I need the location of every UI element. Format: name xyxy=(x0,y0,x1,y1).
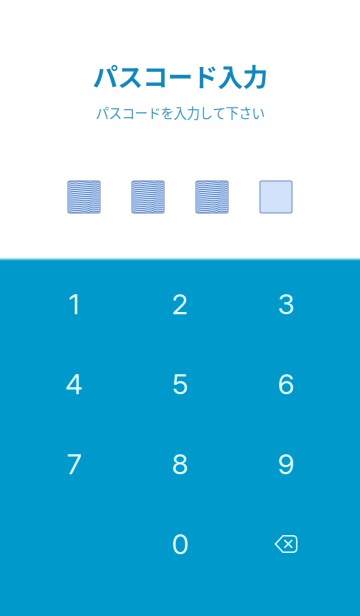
staticText: パスコード入力 xyxy=(92,57,267,94)
button[interactable]: 4 xyxy=(21,344,127,424)
button[interactable]: 3 xyxy=(233,264,339,344)
button[interactable]: 1 xyxy=(21,264,127,344)
staticText: 7 xyxy=(66,447,81,481)
staticText: 5 xyxy=(172,367,188,401)
button[interactable]: 8 xyxy=(127,424,233,504)
staticText: 2 xyxy=(171,287,188,321)
staticText: 3 xyxy=(277,287,294,321)
button[interactable]: 7 xyxy=(21,424,127,504)
staticText: 4 xyxy=(65,367,83,401)
staticText: 9 xyxy=(277,447,294,481)
staticText: 6 xyxy=(277,367,294,401)
staticText: パスコードを入力して下さい xyxy=(95,103,264,122)
button[interactable]: Delete xyxy=(233,504,339,584)
button[interactable]: 6 xyxy=(233,344,339,424)
staticText: 0 xyxy=(171,527,188,561)
button[interactable]: 9 xyxy=(233,424,339,504)
button[interactable]: 5 xyxy=(127,344,233,424)
staticText: 8 xyxy=(171,447,188,481)
button[interactable]: 0 xyxy=(127,504,233,584)
button[interactable]: 2 xyxy=(127,264,233,344)
staticText: 1 xyxy=(68,287,79,321)
